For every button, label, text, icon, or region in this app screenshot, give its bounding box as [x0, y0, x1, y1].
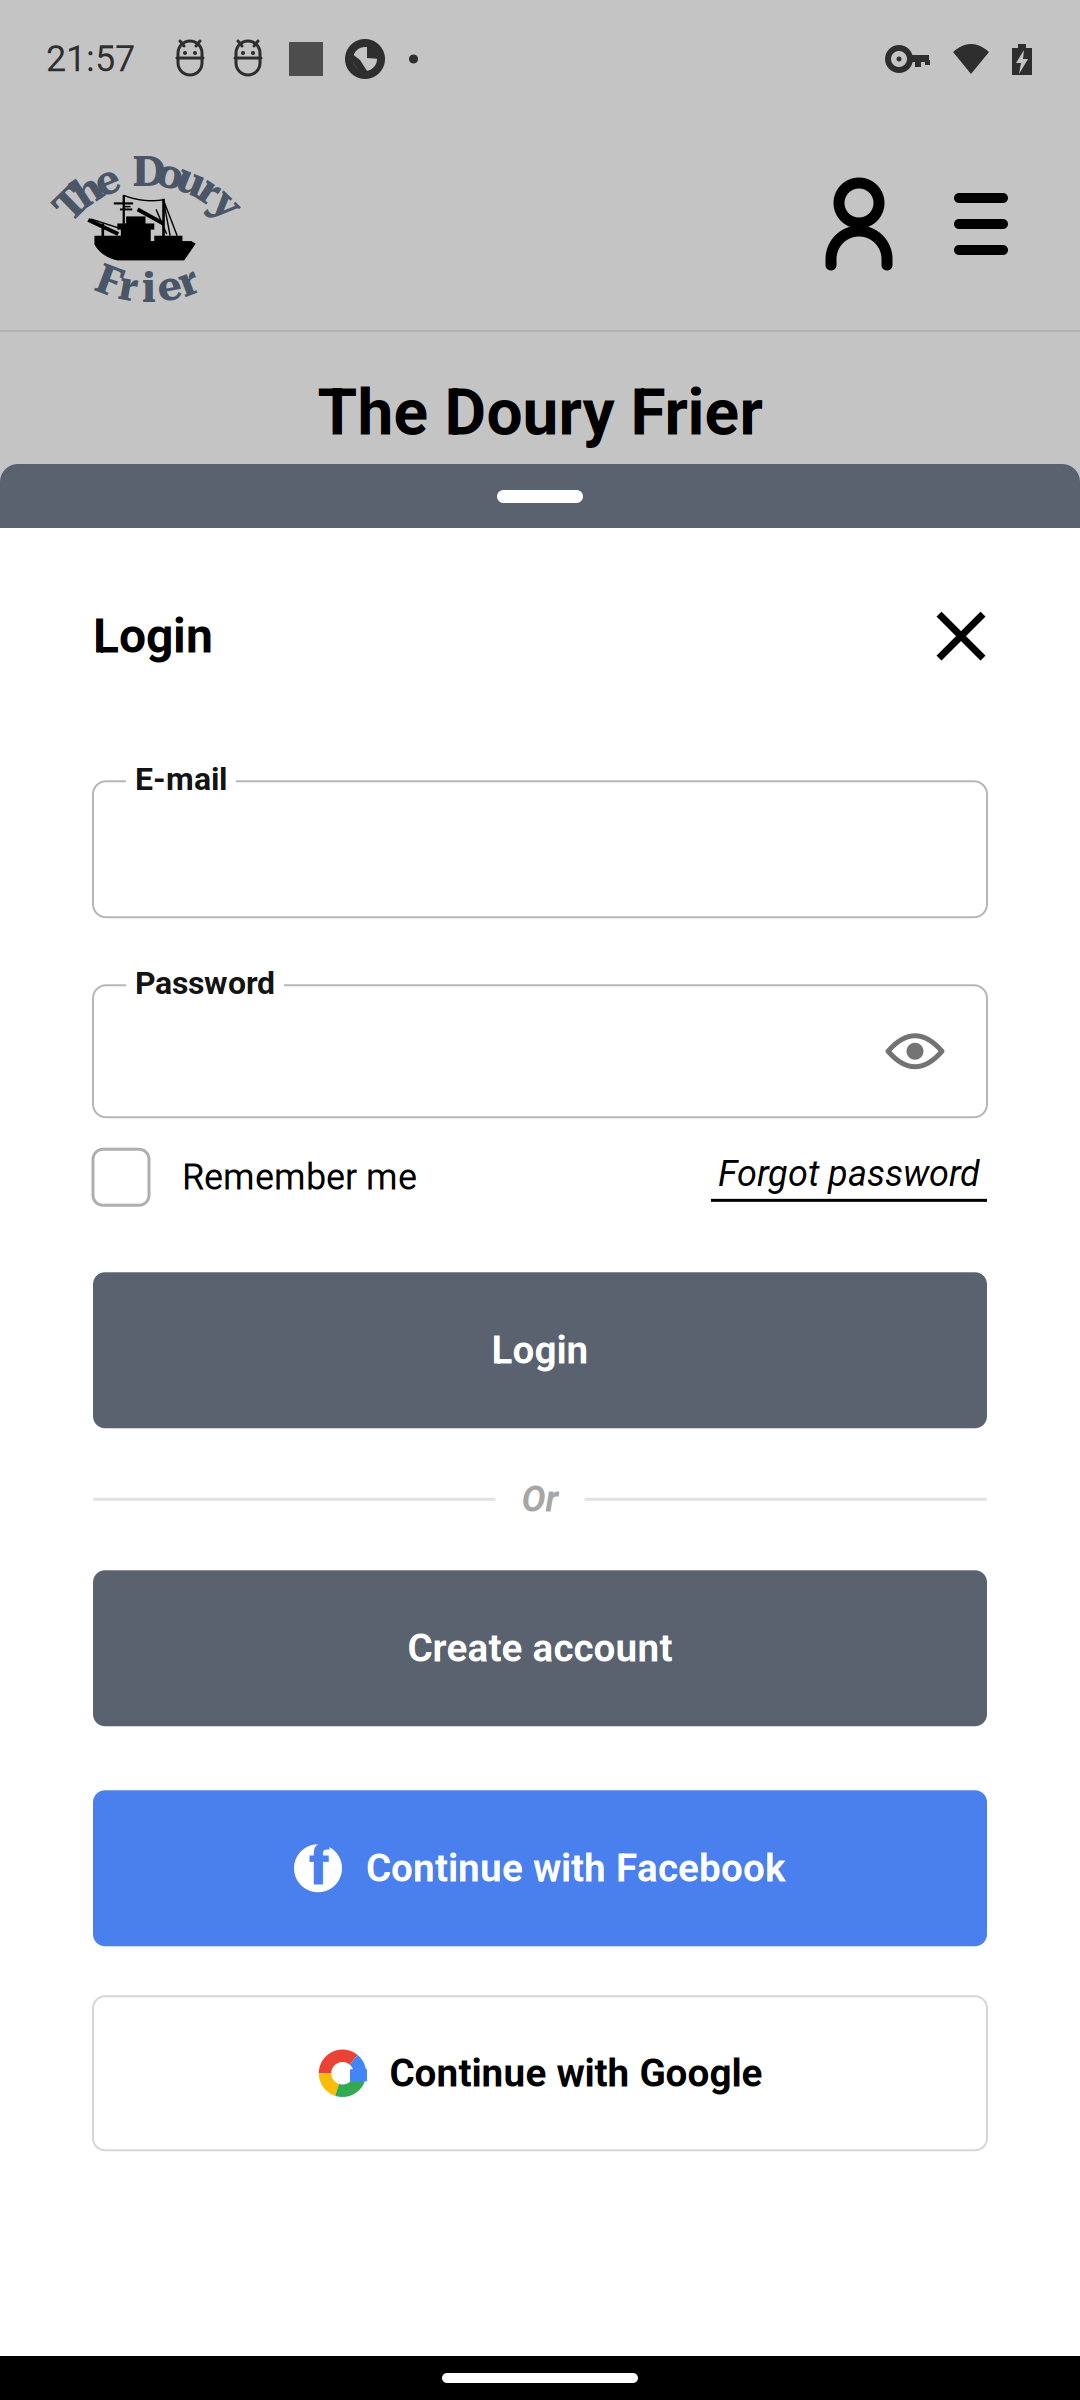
- staticText: Remember me: [182, 1156, 417, 1198]
- staticText: f: [309, 1832, 329, 1898]
- staticText: The Doury Frier: [317, 375, 762, 450]
- staticText: o: [157, 150, 184, 198]
- button[interactable]: Remember me: [93, 1143, 417, 1211]
- staticText: Login: [491, 1328, 588, 1373]
- button[interactable]: Continue with Google: [93, 1996, 987, 2150]
- staticText: 21:57: [46, 38, 135, 80]
- staticText: h: [73, 166, 101, 215]
- staticText: u: [178, 156, 205, 204]
- button[interactable]: Forgot password: [711, 1143, 987, 1211]
- staticText: e: [157, 262, 181, 310]
- button[interactable]: Account: [808, 177, 910, 271]
- staticText: e: [95, 156, 119, 204]
- staticText: Continue with Google: [389, 2051, 762, 2096]
- button[interactable]: f: [93, 1790, 987, 1946]
- staticText: r: [119, 262, 138, 310]
- staticText: Password: [135, 964, 275, 1002]
- staticText: i: [142, 264, 156, 312]
- staticText: F: [97, 257, 122, 305]
- staticText: D: [132, 148, 165, 196]
- staticText: [122, 150, 132, 198]
- staticText: Continue with Facebook: [366, 1846, 786, 1891]
- staticText: E-mail: [135, 760, 227, 798]
- staticText: Or: [521, 1478, 558, 1520]
- button[interactable]: Login: [93, 1272, 987, 1428]
- staticText: T: [56, 180, 86, 228]
- staticText: y: [215, 180, 240, 228]
- button[interactable]: Menu: [938, 193, 1024, 255]
- staticText: r: [179, 257, 198, 305]
- button[interactable]: Create account: [93, 1570, 987, 1726]
- staticText: r: [201, 166, 220, 215]
- staticText: Login: [93, 608, 213, 664]
- staticText: Create account: [407, 1626, 672, 1671]
- button[interactable]: Close: [935, 610, 987, 662]
- staticText: Forgot password: [718, 1153, 980, 1195]
